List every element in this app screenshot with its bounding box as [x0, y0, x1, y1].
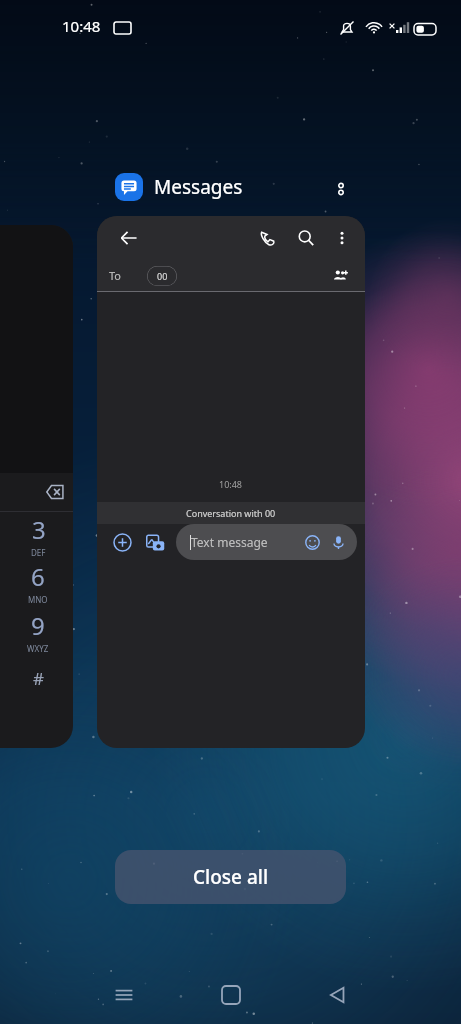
button[interactable]: Voice input: [325, 529, 351, 555]
button[interactable]: 00: [147, 266, 177, 286]
staticText: 10:48: [219, 478, 243, 490]
staticText: 9: [31, 609, 45, 642]
button[interactable]: Attach: [107, 527, 137, 557]
button[interactable]: App options: [325, 173, 357, 205]
staticText: 6: [31, 560, 45, 593]
staticText: Text message: [191, 534, 268, 550]
staticText: MNO: [28, 594, 48, 605]
button[interactable]: Emoji: [299, 529, 325, 555]
button[interactable]: Text message: [176, 524, 357, 560]
button[interactable]: 6: [0, 558, 73, 607]
staticText: 3: [32, 513, 46, 546]
staticText: Messages: [154, 174, 243, 200]
button[interactable]: Close all: [115, 850, 346, 904]
button[interactable]: Back: [107, 216, 151, 260]
button[interactable]: Back: [313, 971, 361, 1019]
staticText: DEF: [31, 547, 46, 558]
button[interactable]: Call: [249, 219, 287, 257]
staticText: Close all: [193, 864, 269, 890]
staticText: #: [33, 667, 44, 690]
button[interactable]: Messages app card: [97, 216, 365, 748]
button[interactable]: 3: [0, 512, 73, 558]
staticText: WXYZ: [27, 643, 49, 654]
button[interactable]: 9: [0, 607, 73, 656]
button[interactable]: Add recipients: [325, 260, 357, 291]
button[interactable]: Messages app icon: [115, 173, 143, 201]
button[interactable]: Phone app card: [0, 225, 73, 748]
button[interactable]: Search: [287, 219, 325, 257]
staticText: 10:48: [62, 16, 101, 36]
staticText: To: [109, 268, 122, 283]
button[interactable]: Gallery: [140, 527, 170, 557]
button[interactable]: More options: [325, 221, 359, 255]
staticText: Conversation with 00: [186, 507, 276, 519]
button[interactable]: Home: [207, 971, 255, 1019]
button[interactable]: Recent apps: [100, 971, 148, 1019]
staticText: 00: [157, 270, 168, 282]
